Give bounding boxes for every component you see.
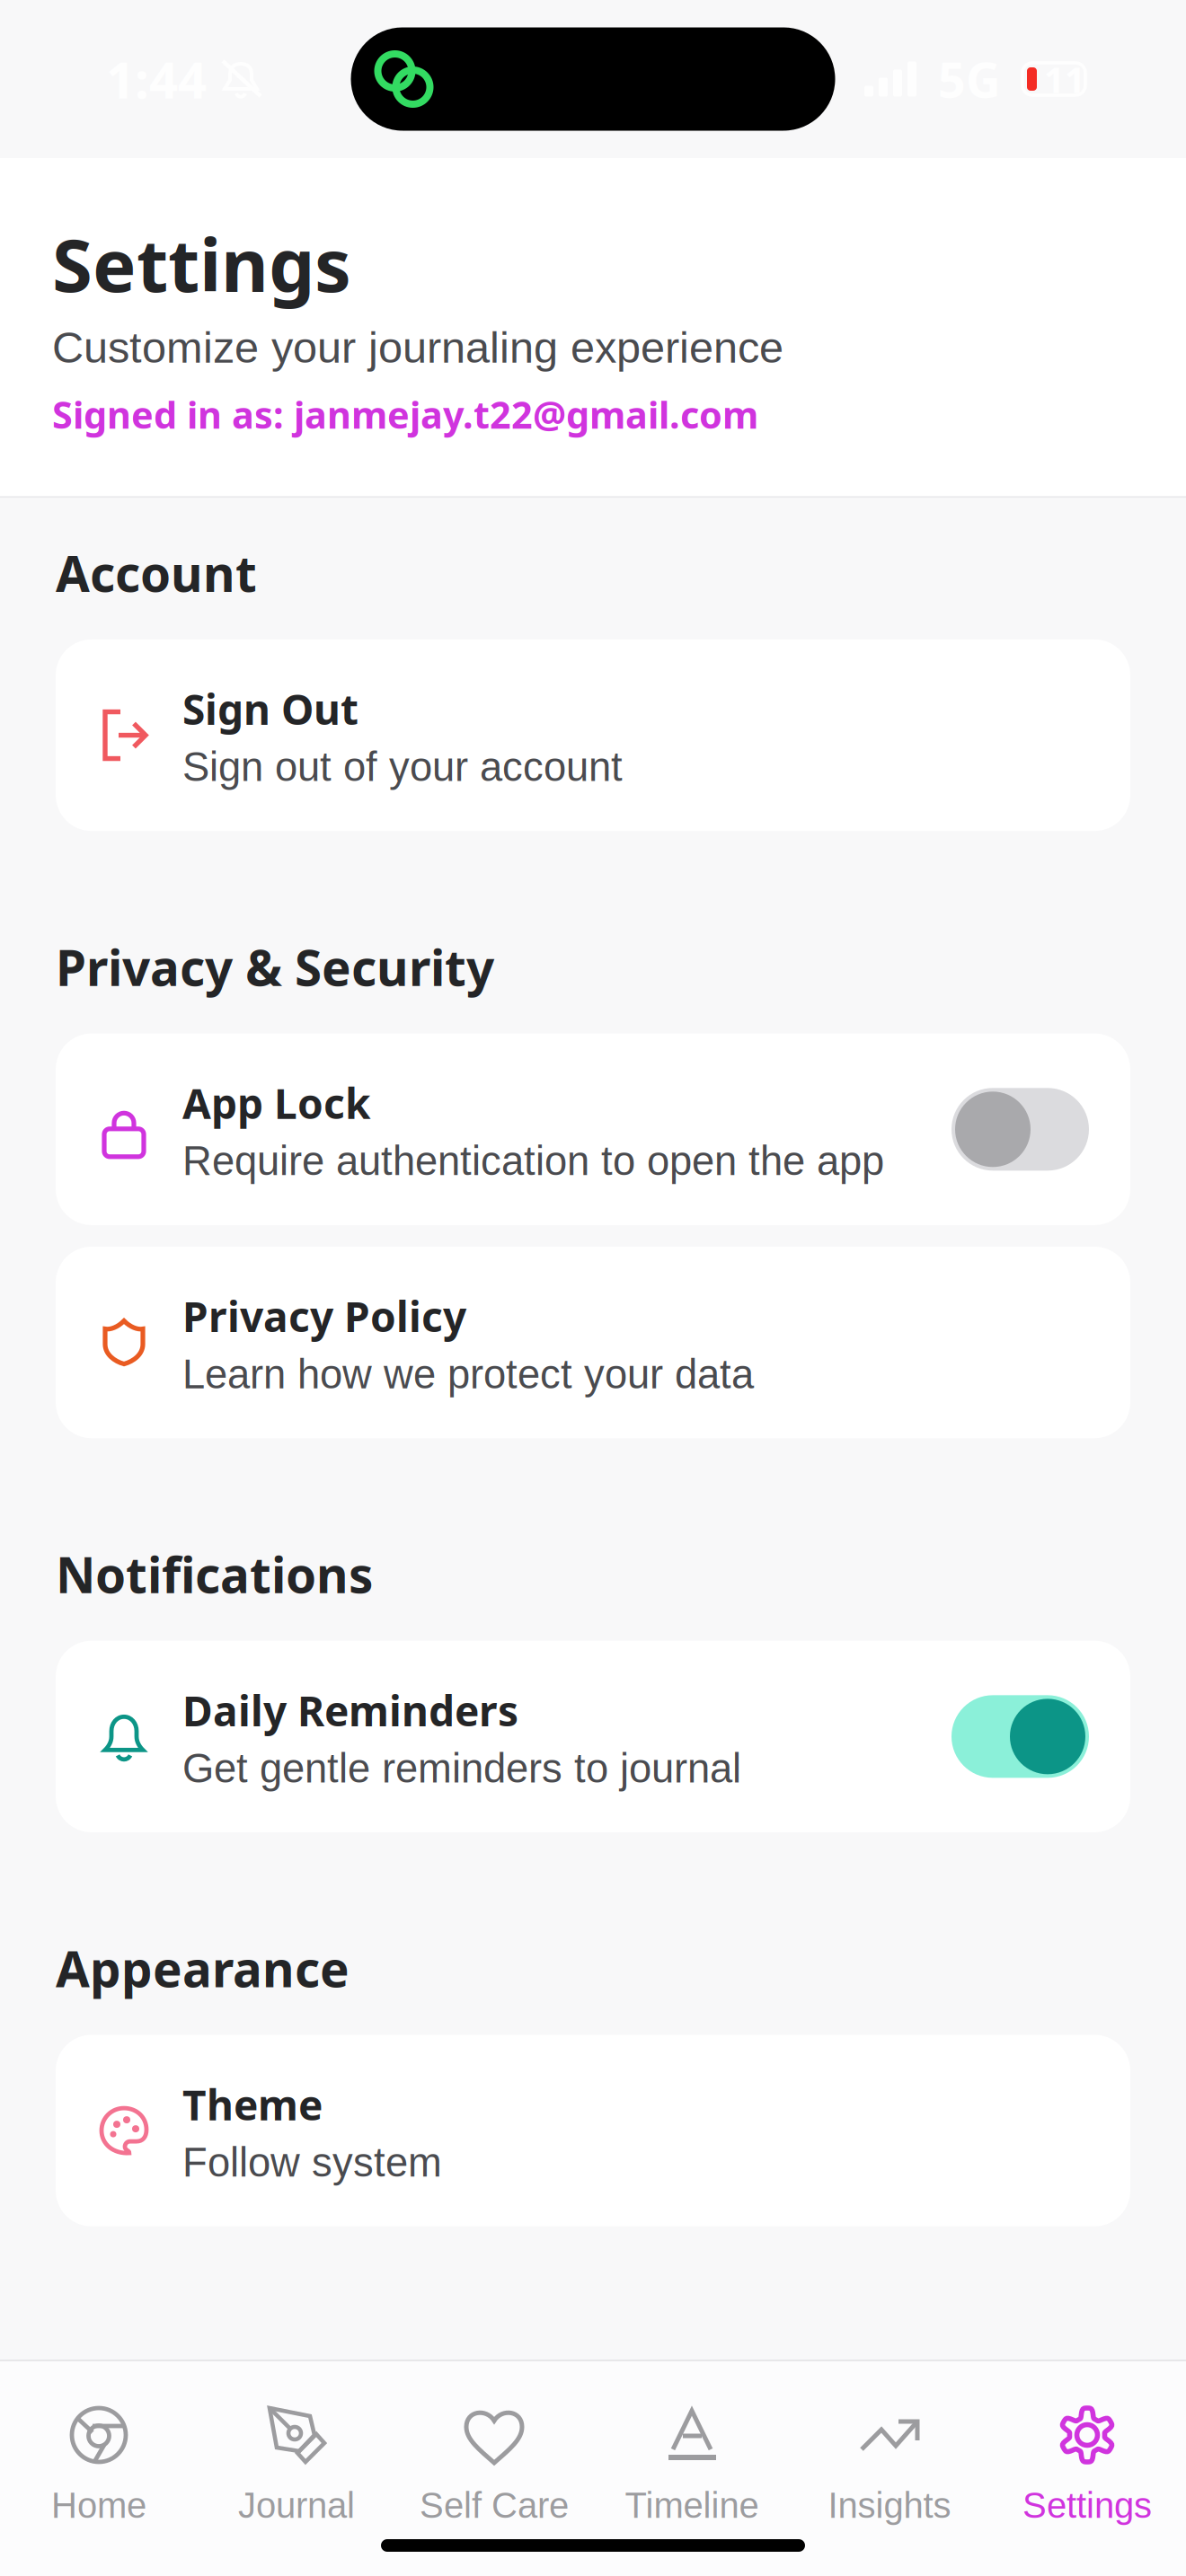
staticText: Self Care bbox=[420, 2485, 569, 2525]
staticText: Customize your journaling experience bbox=[52, 323, 783, 372]
button[interactable]: Privacy Policy bbox=[56, 1247, 1130, 1438]
button[interactable]: Home bbox=[0, 2361, 198, 2525]
staticText: Theme bbox=[182, 2076, 323, 2132]
staticText: Notifications bbox=[56, 1541, 373, 1607]
staticText: Account bbox=[56, 539, 257, 606]
button[interactable]: Timeline bbox=[593, 2361, 791, 2525]
button[interactable]: Theme bbox=[56, 2035, 1130, 2226]
staticText: Journal bbox=[238, 2485, 355, 2525]
staticText: Timeline bbox=[625, 2485, 759, 2525]
staticText: Sign out of your account bbox=[182, 744, 623, 790]
staticText: Appearance bbox=[56, 1935, 350, 2002]
button[interactable]: Daily Reminders bbox=[56, 1641, 1130, 1832]
button[interactable]: Settings bbox=[988, 2361, 1186, 2525]
staticText: Require authentication to open the app bbox=[182, 1138, 884, 1184]
staticText: Insights bbox=[828, 2485, 951, 2525]
button[interactable]: Insights bbox=[791, 2361, 988, 2525]
button[interactable]: App Lock bbox=[56, 1034, 1130, 1225]
button[interactable]: Self Care bbox=[395, 2361, 593, 2525]
staticText: Home bbox=[51, 2485, 146, 2525]
staticText: Follow system bbox=[182, 2140, 442, 2185]
staticText: Daily Reminders bbox=[182, 1682, 518, 1738]
staticText: Signed in as: janmejay.t22@gmail.com bbox=[52, 389, 758, 440]
staticText: Privacy Policy bbox=[182, 1288, 466, 1344]
staticText: Settings bbox=[1022, 2485, 1152, 2525]
button[interactable]: Journal bbox=[198, 2361, 395, 2525]
button[interactable]: Sign Out bbox=[56, 639, 1130, 831]
staticText: Learn how we protect your data bbox=[182, 1351, 754, 1397]
staticText: Settings bbox=[52, 214, 351, 313]
staticText: Get gentle reminders to journal bbox=[182, 1746, 741, 1791]
staticText: Privacy & Security bbox=[56, 933, 494, 1000]
staticText: Sign Out bbox=[182, 681, 358, 737]
staticText: App Lock bbox=[182, 1075, 371, 1131]
